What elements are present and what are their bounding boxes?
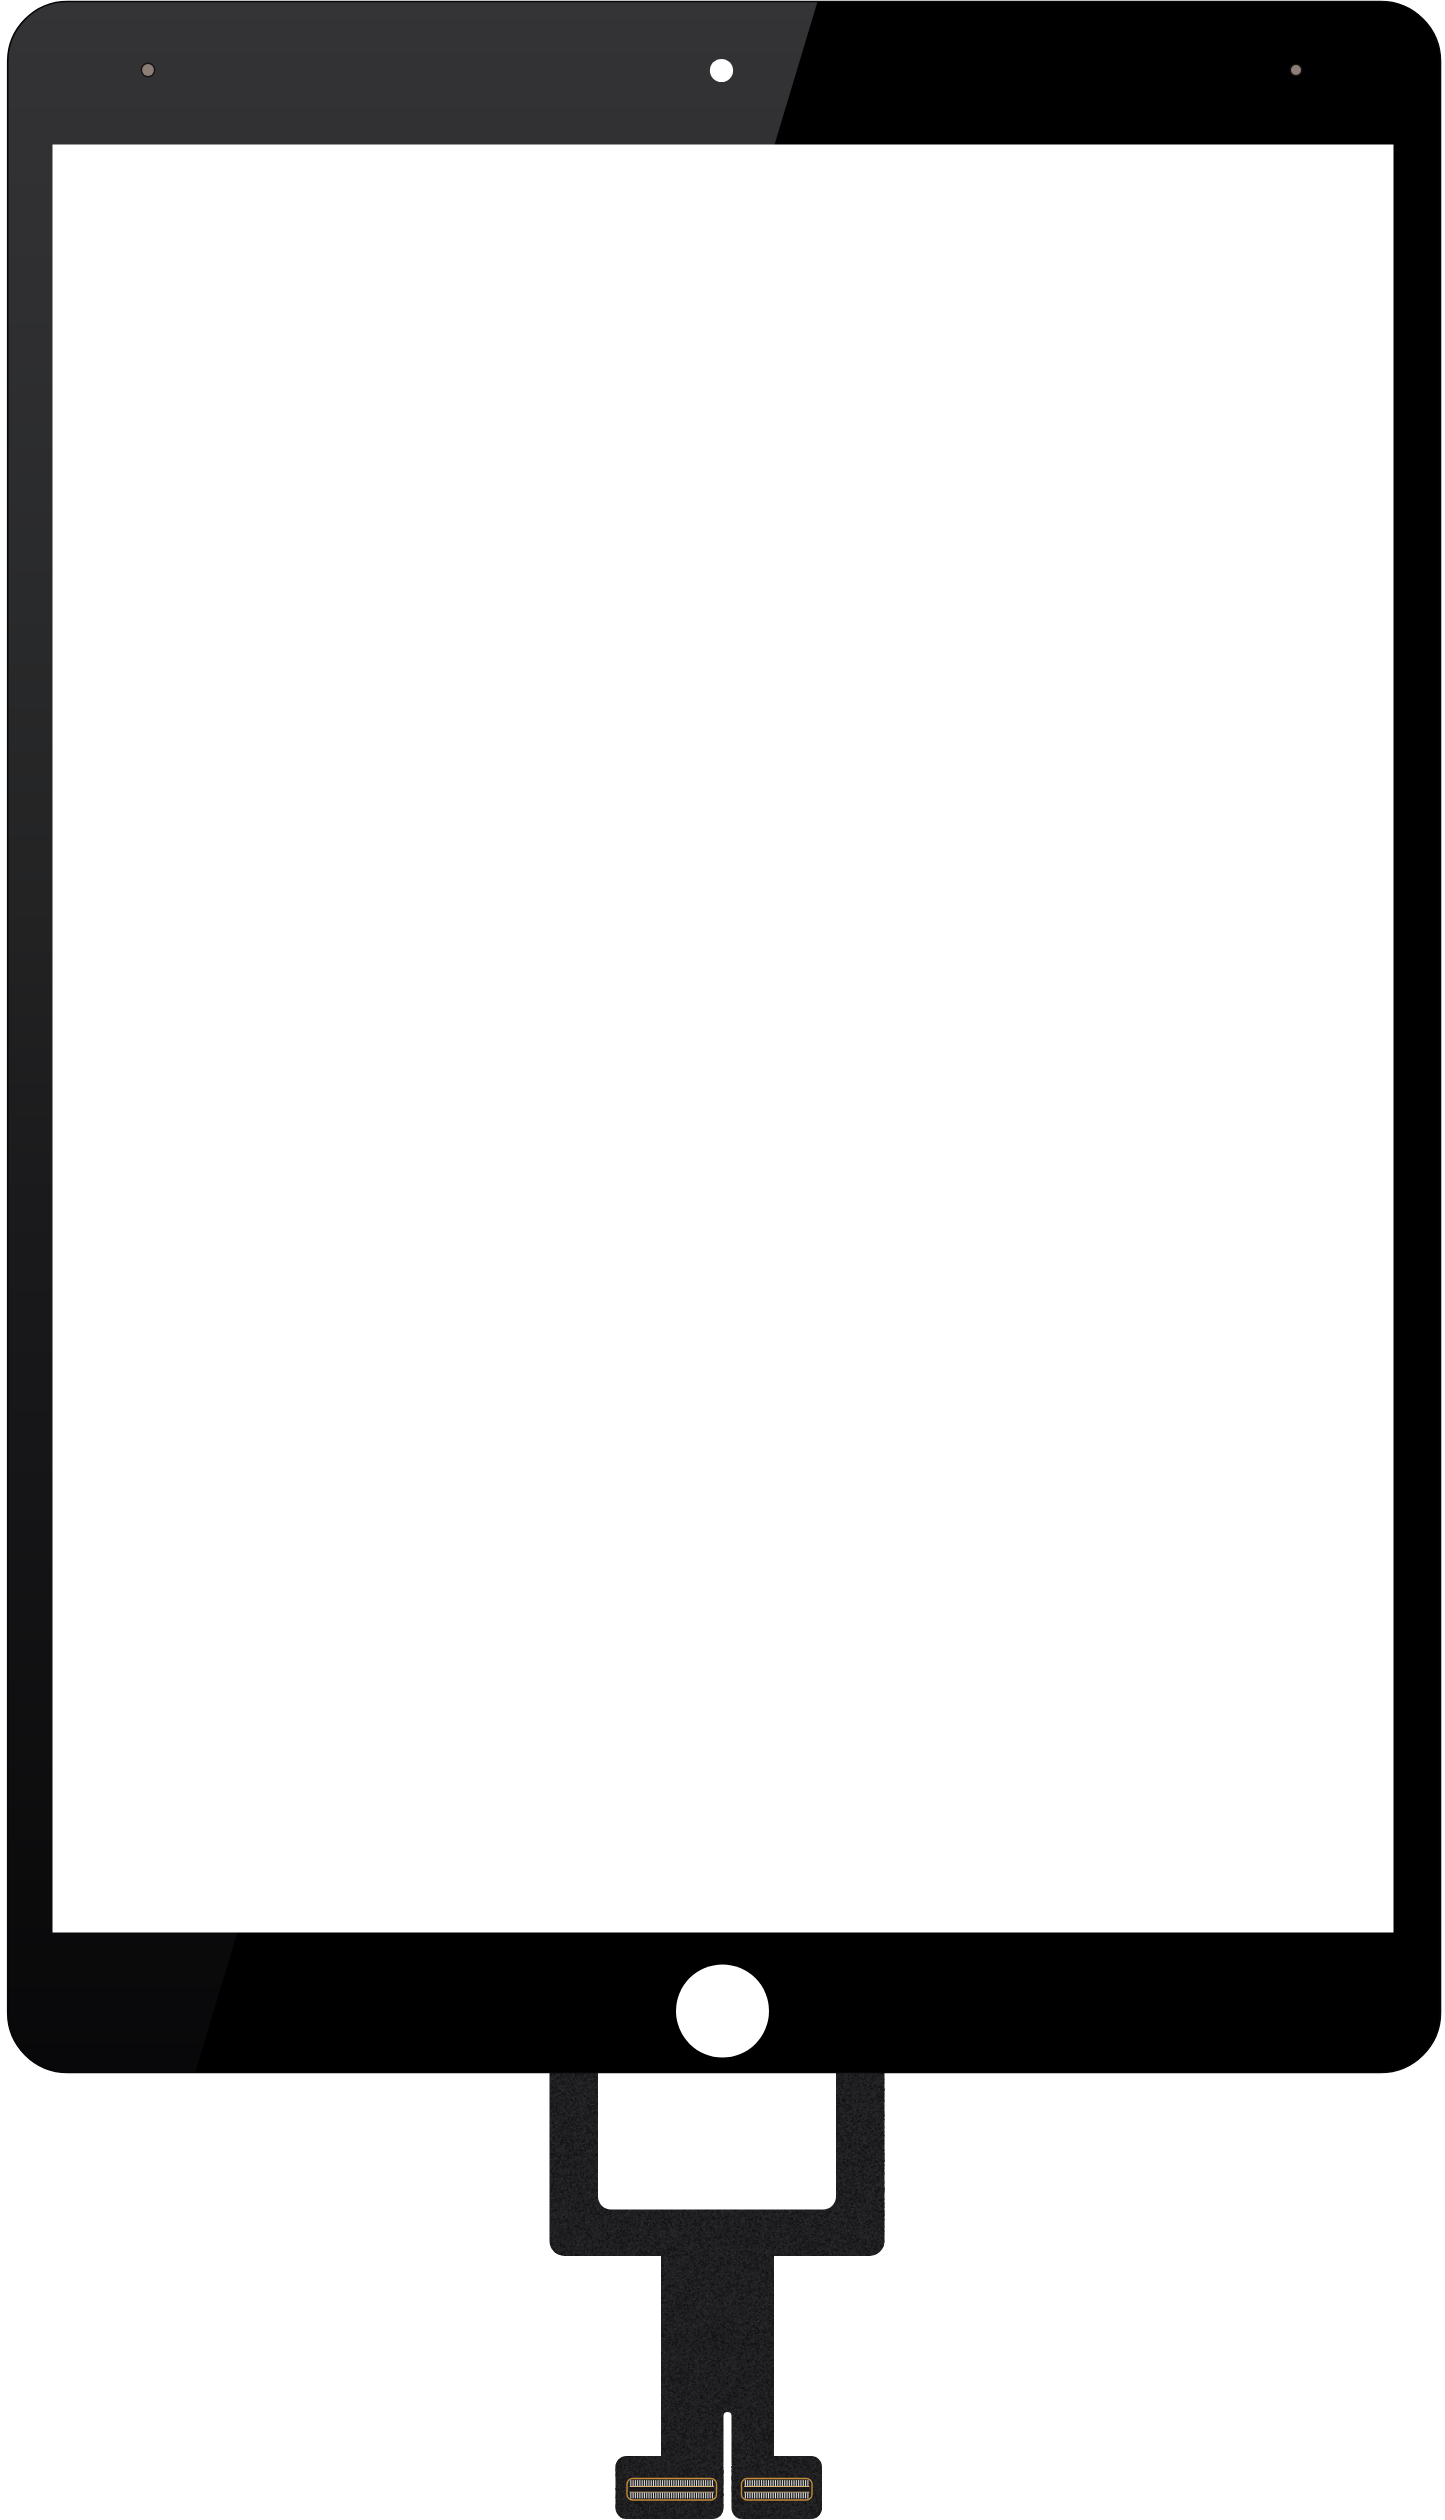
button[interactable]: iPad touch screen digitizer glass assemb… bbox=[0, 0, 1445, 2520]
